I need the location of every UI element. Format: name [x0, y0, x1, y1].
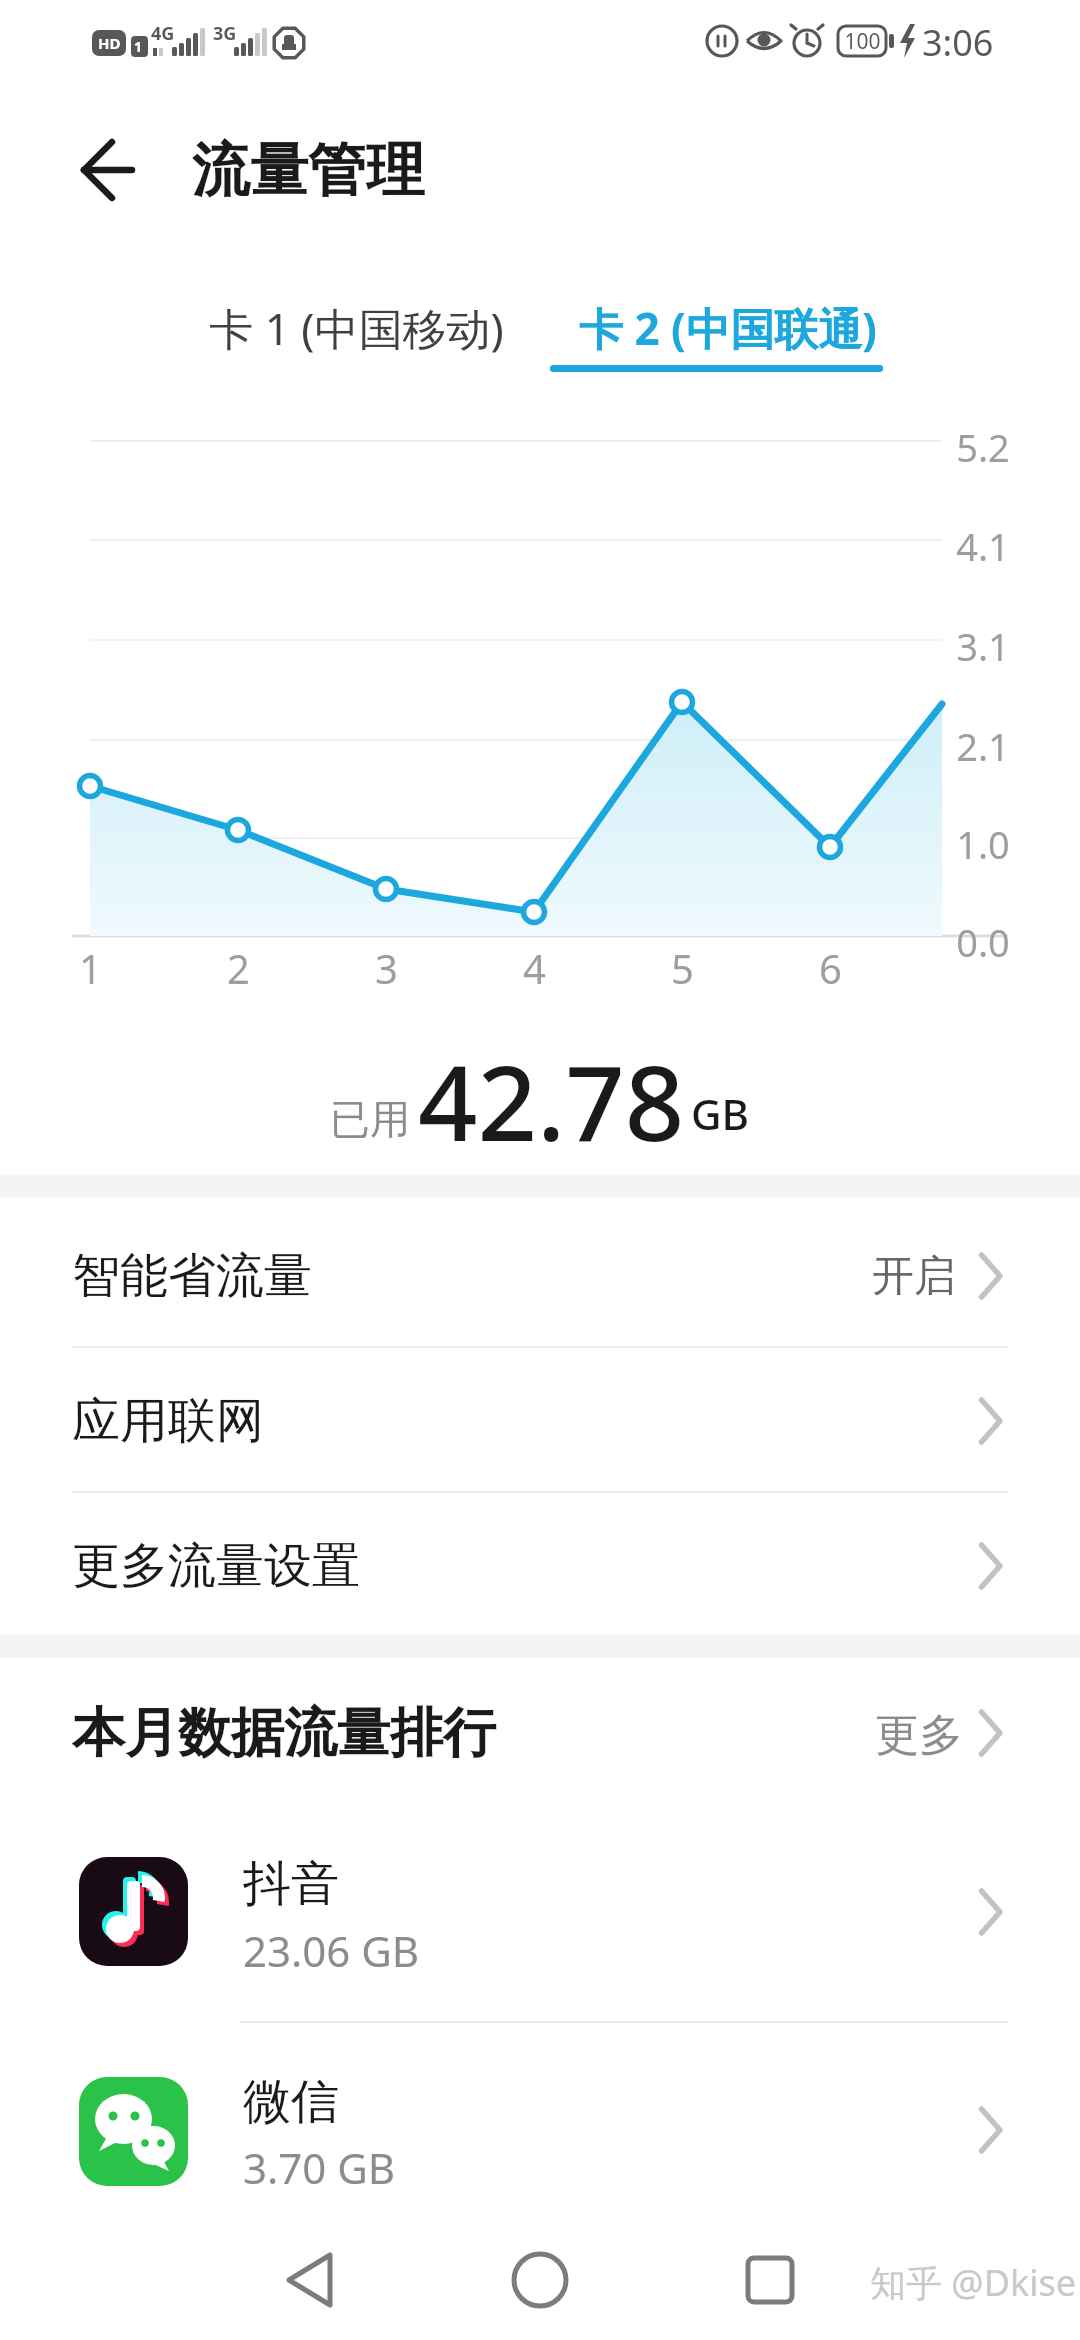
staticText: 1.0 — [956, 818, 1010, 870]
staticText: 23.06 GB — [243, 1922, 420, 1979]
staticText: 卡 2 (中国联通) — [579, 298, 877, 358]
staticText: 4 — [523, 941, 546, 995]
button[interactable] — [710, 2240, 830, 2330]
button[interactable] — [60, 140, 150, 200]
staticText: 1 — [79, 941, 102, 995]
staticText: 微信 — [243, 2072, 339, 2132]
staticText: 3:06 — [922, 18, 994, 67]
button[interactable] — [0, 1494, 1080, 1638]
button[interactable] — [0, 1349, 1080, 1493]
staticText: HD — [98, 33, 121, 53]
staticText: 42.78 — [418, 1030, 685, 1160]
staticText: 100 — [844, 27, 881, 56]
button[interactable] — [0, 1204, 1080, 1348]
staticText: 1 — [134, 37, 143, 56]
staticText: 2.1 — [956, 720, 1010, 772]
staticText: 更多 — [875, 1708, 963, 1763]
button[interactable] — [0, 1845, 1080, 1980]
staticText: 开启 — [872, 1250, 956, 1303]
staticText: 0.0 — [956, 916, 1010, 968]
button[interactable] — [480, 2240, 600, 2330]
button[interactable]: 卡 2 (中国联通) — [518, 283, 938, 373]
button[interactable] — [250, 2240, 370, 2330]
staticText: 2 — [227, 941, 250, 995]
staticText: 智能省流量 — [72, 1246, 312, 1306]
staticText: 本月数据流量排行 — [72, 1700, 496, 1767]
staticText: 应用联网 — [72, 1391, 264, 1451]
staticText: 3.1 — [956, 620, 1010, 672]
staticText: 更多流量设置 — [72, 1536, 360, 1596]
staticText: 5.2 — [956, 421, 1010, 473]
staticText: 卡 1 (中国移动) — [209, 298, 504, 358]
staticText: 知乎 @Dkise — [870, 2258, 1077, 2307]
staticText: 4G — [151, 21, 175, 46]
staticText: 3.70 GB — [243, 2139, 396, 2196]
staticText: 5 — [671, 941, 694, 995]
staticText: 4.1 — [956, 520, 1010, 572]
staticText: GB — [691, 1085, 750, 1142]
staticText: 已用 — [330, 1094, 410, 1144]
button[interactable]: 卡 1 (中国移动) — [146, 283, 566, 373]
staticText: 3G — [213, 21, 237, 46]
button[interactable] — [0, 2065, 1080, 2200]
staticText: 抖音 — [243, 1854, 339, 1914]
staticText: 流量管理 — [192, 134, 424, 207]
button[interactable] — [850, 1700, 1020, 1770]
staticText: 3 — [375, 941, 398, 995]
staticText: 6 — [819, 941, 842, 995]
